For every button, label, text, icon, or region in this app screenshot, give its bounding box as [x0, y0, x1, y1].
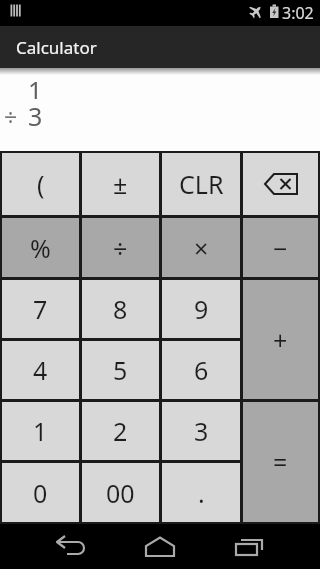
button[interactable]: 2	[82, 402, 159, 460]
button[interactable]	[243, 153, 318, 215]
button[interactable]: 6	[162, 341, 240, 399]
staticText: +	[273, 323, 288, 357]
button[interactable]: .	[162, 463, 240, 522]
button[interactable]: ×	[162, 218, 240, 277]
button[interactable]: (	[2, 153, 79, 215]
button[interactable]: +	[243, 280, 318, 399]
staticText: ×	[194, 231, 209, 265]
staticText: 2	[113, 414, 128, 448]
staticText: 4	[33, 353, 48, 387]
staticText: %	[30, 231, 51, 265]
staticText: 1	[33, 414, 48, 448]
button[interactable]: ÷	[82, 218, 159, 277]
button[interactable]: 5	[82, 341, 159, 399]
staticText: 3	[194, 414, 209, 448]
staticText: (	[37, 167, 45, 201]
staticText: 9	[194, 292, 209, 326]
staticText: −	[273, 231, 288, 265]
staticText: .	[198, 476, 205, 510]
staticText: CLR	[179, 167, 224, 201]
button[interactable]: =	[243, 402, 318, 522]
button[interactable]: 1	[2, 402, 79, 460]
staticText: =	[273, 445, 288, 479]
button[interactable]	[127, 524, 193, 569]
staticText: 00	[106, 476, 135, 510]
button[interactable]: Calculator	[0, 26, 320, 68]
staticText: 6	[194, 353, 209, 387]
staticText: 8	[113, 292, 128, 326]
button[interactable]: 3	[162, 402, 240, 460]
staticText: 1	[28, 73, 43, 99]
button[interactable]	[38, 524, 104, 569]
button[interactable]: 8	[82, 280, 159, 338]
button[interactable]: %	[2, 218, 79, 277]
button[interactable]	[216, 524, 282, 569]
staticText: 5	[113, 353, 128, 387]
staticText: 3	[28, 99, 43, 133]
button[interactable]: 9	[162, 280, 240, 338]
button[interactable]: ±	[82, 153, 159, 215]
button[interactable]: −	[243, 218, 318, 277]
staticText: 3:02	[282, 2, 314, 24]
button[interactable]: 7	[2, 280, 79, 338]
staticText: Calculator	[16, 36, 97, 59]
staticText: ÷	[113, 231, 128, 265]
button[interactable]: 0	[2, 463, 79, 522]
button[interactable]: CLR	[162, 153, 240, 215]
button[interactable]: 4	[2, 341, 79, 399]
staticText: 7	[33, 292, 48, 326]
staticText: ÷	[4, 101, 18, 132]
staticText: 0	[33, 476, 48, 510]
button[interactable]: 00	[82, 463, 159, 522]
staticText: ±	[113, 167, 128, 201]
